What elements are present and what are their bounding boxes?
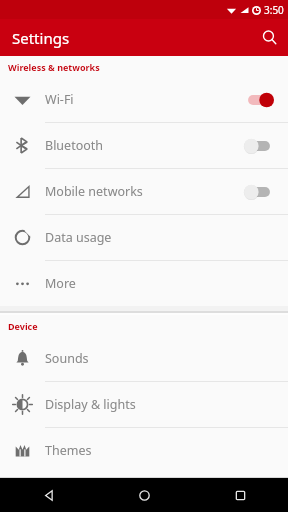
button[interactable]: Search	[251, 19, 288, 56]
staticText: Device	[8, 320, 38, 332]
staticText: Wi-Fi	[45, 91, 242, 108]
button[interactable]: Data usage	[0, 215, 288, 260]
button[interactable]: More	[0, 261, 288, 306]
button[interactable]: Recents	[192, 478, 288, 512]
staticText: Sounds	[45, 350, 276, 367]
button[interactable]: Home	[96, 478, 192, 512]
staticText: Themes	[45, 442, 276, 459]
staticText: Display & lights	[45, 396, 276, 413]
staticText: Data usage	[45, 229, 276, 246]
button[interactable]: Wi-Fi toggle	[242, 87, 276, 113]
staticText: Mobile networks	[45, 183, 242, 200]
button[interactable]: Back	[0, 478, 96, 512]
button[interactable]: Themes	[0, 428, 288, 473]
button[interactable]: Bluetooth toggle	[242, 133, 276, 159]
button[interactable]: Bluetooth	[0, 123, 288, 168]
staticText: 3:50	[264, 3, 284, 17]
button[interactable]: Mobile networks	[0, 169, 288, 214]
staticText: Bluetooth	[45, 137, 242, 154]
button[interactable]: Wi-Fi	[0, 77, 288, 122]
staticText: Settings	[12, 28, 70, 48]
button[interactable]: Display & lights	[0, 382, 288, 427]
button[interactable]: Sounds	[0, 336, 288, 381]
staticText: More	[45, 275, 276, 292]
staticText: Wireless & networks	[8, 61, 100, 73]
button[interactable]: Mobile networks toggle	[242, 179, 276, 205]
